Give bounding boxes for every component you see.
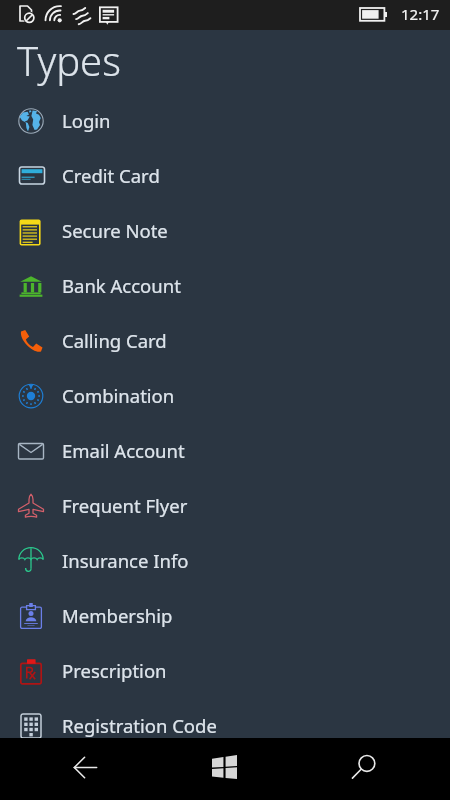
staticText: Frequent Flyer <box>62 493 188 518</box>
button[interactable]: Login <box>0 93 450 148</box>
button[interactable]: Start <box>175 738 275 800</box>
staticText: Bank Account <box>62 273 181 298</box>
button[interactable]: Combination <box>0 368 450 423</box>
button[interactable]: Frequent Flyer <box>0 478 450 533</box>
button[interactable]: Calling Card <box>0 313 450 368</box>
button[interactable]: Bank Account <box>0 258 450 313</box>
staticText: Login <box>62 108 111 133</box>
staticText: Membership <box>62 603 173 628</box>
staticText: Insurance Info <box>62 548 189 573</box>
button[interactable]: Membership <box>0 588 450 643</box>
button[interactable]: Email Account <box>0 423 450 478</box>
button[interactable]: Insurance Info <box>0 533 450 588</box>
staticText: Types <box>17 33 121 87</box>
button[interactable]: Search <box>315 738 415 800</box>
staticText: Prescription <box>62 658 167 683</box>
button[interactable]: Back <box>36 738 136 800</box>
button[interactable]: Secure Note <box>0 203 450 258</box>
staticText: Combination <box>62 383 175 408</box>
button[interactable]: Prescription <box>0 643 450 698</box>
staticText: 12:17 <box>401 4 440 24</box>
staticText: Email Account <box>62 438 185 463</box>
button[interactable]: Credit Card <box>0 148 450 203</box>
staticText: Registration Code <box>62 713 217 738</box>
staticText: Calling Card <box>62 328 167 353</box>
staticText: Secure Note <box>62 218 168 243</box>
button[interactable]: Registration Code <box>0 698 450 753</box>
staticText: Credit Card <box>62 163 160 188</box>
